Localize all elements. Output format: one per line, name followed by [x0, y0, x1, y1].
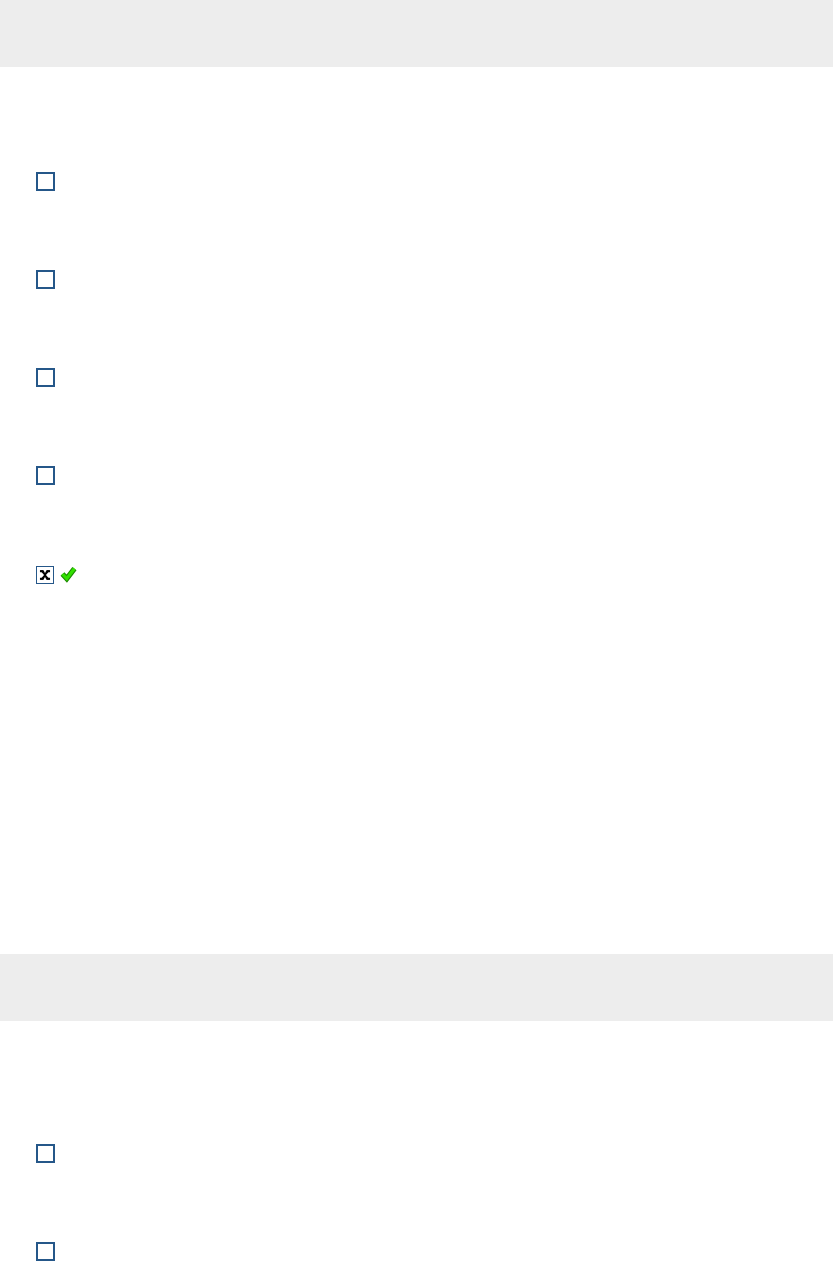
button[interactable]: Option 4	[36, 466, 55, 485]
button[interactable]: Option 5	[36, 1144, 55, 1163]
button[interactable]: Option 2	[36, 270, 55, 289]
button[interactable]: Option 3	[36, 368, 55, 387]
button[interactable]: Option 1	[36, 172, 55, 191]
button[interactable]: Option 6	[36, 1242, 55, 1261]
button[interactable]: Broken image, verified	[36, 566, 77, 584]
